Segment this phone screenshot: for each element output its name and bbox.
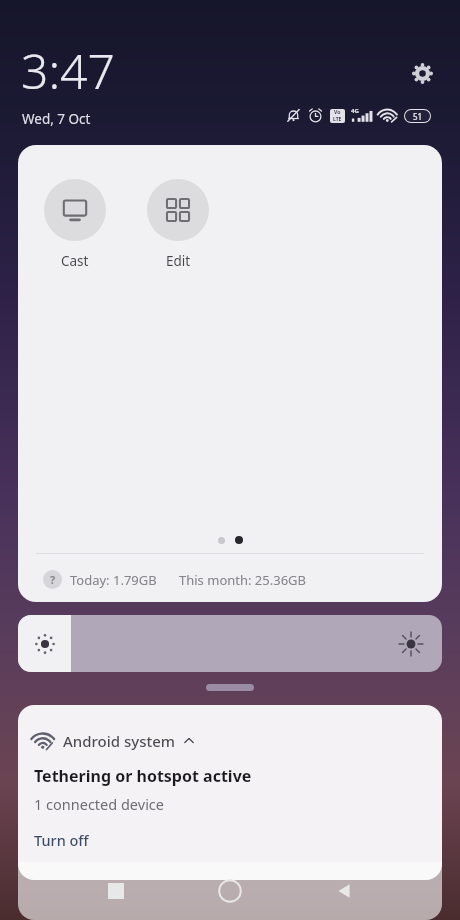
- button[interactable]: [18, 615, 442, 672]
- staticText: Cast: [61, 252, 89, 270]
- staticText: 1 connected device: [34, 794, 165, 814]
- staticText: Vo: [334, 109, 341, 116]
- staticText: Turn off: [34, 830, 89, 850]
- staticText: Edit: [166, 252, 191, 270]
- staticText: Tethering or hotspot active: [34, 765, 252, 787]
- staticText: LTE: [333, 116, 342, 123]
- button[interactable]: [206, 684, 254, 691]
- button[interactable]: Android system: [18, 705, 442, 880]
- staticText: 51: [413, 111, 423, 122]
- staticText: Android system: [63, 731, 176, 751]
- staticText: 4G: [351, 107, 359, 115]
- button[interactable]: Back: [320, 867, 368, 915]
- staticText: Wed, 7 Oct: [22, 110, 91, 128]
- staticText: Today: 1.79GB: [70, 571, 157, 589]
- button[interactable]: Home: [206, 867, 254, 915]
- staticText: ?: [50, 572, 56, 587]
- button[interactable]: Turn off: [34, 830, 89, 850]
- button[interactable]: Settings: [404, 55, 440, 91]
- staticText: 3:47: [21, 38, 115, 103]
- button[interactable]: Edit: [145, 179, 211, 270]
- staticText: This month: 25.36GB: [179, 571, 307, 589]
- button[interactable]: Recents: [92, 867, 140, 915]
- button[interactable]: Cast: [42, 179, 108, 270]
